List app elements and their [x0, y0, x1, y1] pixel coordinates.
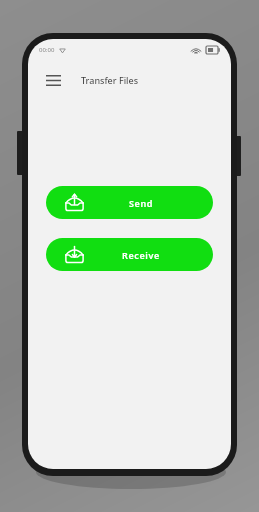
button[interactable]: Send: [46, 186, 213, 219]
staticText: Send: [85, 197, 197, 209]
button[interactable]: Open navigation menu: [41, 68, 65, 92]
staticText: Receive: [85, 249, 197, 261]
staticText: 00:00: [39, 46, 55, 54]
button[interactable]: Receive: [46, 238, 213, 271]
staticText: Transfer Files: [81, 74, 139, 86]
